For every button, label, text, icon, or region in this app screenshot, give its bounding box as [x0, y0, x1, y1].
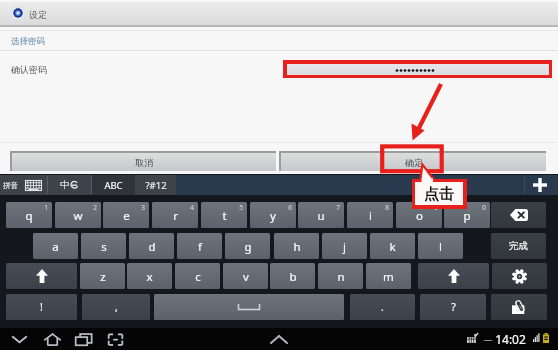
button[interactable]: o [396, 202, 442, 228]
button[interactable]: . [350, 294, 415, 320]
button[interactable]: s [81, 233, 126, 259]
staticText: , [115, 300, 118, 314]
staticText: . [381, 300, 384, 314]
staticText: 拼音 [3, 181, 18, 190]
button[interactable]: Shift [418, 263, 489, 289]
button[interactable]: 拼音 [0, 175, 46, 195]
button[interactable]: t [201, 202, 247, 228]
button[interactable]: g [225, 233, 270, 259]
button[interactable]: v [223, 263, 268, 289]
button[interactable]: b [270, 263, 315, 289]
staticText: 确定 [405, 157, 423, 168]
staticText: x [146, 269, 153, 285]
button[interactable]: i [347, 202, 393, 228]
staticText: 确认密码 [11, 64, 47, 75]
button[interactable]: 完成 [491, 233, 546, 259]
button[interactable]: f [177, 233, 222, 259]
staticText: — [483, 333, 493, 345]
button[interactable]: Attachment [491, 294, 547, 320]
staticText: h [293, 239, 301, 255]
button[interactable]: ABC [92, 175, 135, 195]
button[interactable]: k [370, 233, 415, 259]
button[interactable]: Chinese / English [48, 175, 90, 195]
button[interactable]: Screenshot [103, 328, 127, 350]
button[interactable]: q [6, 202, 52, 228]
button[interactable]: Add [525, 175, 554, 195]
button[interactable]: u [298, 202, 344, 228]
staticText: k [389, 239, 396, 255]
button[interactable]: 点击 [415, 182, 463, 205]
button[interactable]: Back [7, 328, 31, 350]
button[interactable]: p [444, 202, 490, 228]
staticText: 点击 [424, 185, 454, 204]
button[interactable]: n [318, 263, 363, 289]
staticText: j [343, 239, 346, 255]
staticText: 3 [141, 203, 145, 212]
staticText: ABC [104, 179, 123, 192]
button[interactable]: z [80, 263, 125, 289]
staticText: s [101, 239, 107, 255]
staticText: g [244, 239, 252, 255]
button[interactable]: m [366, 263, 411, 289]
staticText: ?#12 [145, 179, 167, 192]
button[interactable]: d [129, 233, 174, 259]
staticText: 0 [482, 203, 486, 212]
staticText: p [463, 208, 471, 224]
button[interactable]: , [82, 294, 150, 320]
staticText: v [243, 269, 249, 285]
staticText: c [195, 269, 201, 285]
button[interactable]: c [175, 263, 220, 289]
staticText: 取消 [135, 157, 153, 168]
staticText: l [439, 239, 442, 255]
button[interactable]: Backspace [491, 202, 546, 228]
button[interactable]: Keyboard settings [492, 263, 547, 289]
button[interactable]: a [33, 233, 78, 259]
button[interactable]: ? [420, 294, 486, 320]
button[interactable]: Shift [6, 263, 77, 289]
button[interactable]: r [152, 202, 198, 228]
button[interactable]: ! [6, 294, 77, 320]
button[interactable]: x [127, 263, 172, 289]
staticText: n [337, 269, 345, 285]
button[interactable]: h [274, 233, 319, 259]
staticText: r [173, 208, 178, 224]
button[interactable]: 确定 [279, 151, 546, 171]
button[interactable]: y [250, 202, 296, 228]
staticText: ! [40, 300, 43, 314]
staticText: 7 [336, 203, 340, 212]
button[interactable]: Space [154, 294, 344, 320]
staticText: 14:02 [495, 331, 526, 347]
staticText: b [289, 269, 297, 285]
button[interactable]: j [322, 233, 367, 259]
button[interactable]: e [103, 202, 149, 228]
staticText: 5 [239, 203, 243, 212]
staticText: 设定 [29, 9, 47, 20]
staticText: w [73, 208, 83, 224]
button[interactable]: ?#12 [135, 175, 176, 195]
staticText: 2 [93, 203, 97, 212]
button[interactable] [287, 64, 549, 75]
staticText: z [100, 269, 106, 285]
staticText: o [416, 208, 423, 224]
staticText: 完成 [509, 240, 528, 252]
staticText: m [383, 269, 394, 285]
button[interactable]: w [55, 202, 101, 228]
staticText: f [198, 239, 202, 255]
staticText: ? [451, 300, 456, 314]
button[interactable]: 选择密码 [0, 31, 558, 50]
staticText: i [369, 208, 372, 224]
staticText: u [317, 208, 325, 224]
staticText: 1 [44, 203, 48, 212]
staticText: 8 [385, 203, 389, 212]
button[interactable]: l [418, 233, 463, 259]
staticText: 9 [434, 203, 438, 212]
button[interactable]: Home [40, 328, 64, 350]
button[interactable]: Hide keyboard [266, 330, 292, 348]
staticText: d [148, 239, 156, 255]
staticText: 中 [60, 179, 70, 191]
staticText: a [52, 239, 59, 255]
button[interactable]: 设定 [0, 2, 558, 25]
button[interactable]: Recents [71, 328, 95, 350]
staticText: t [222, 208, 227, 224]
button[interactable]: 取消 [10, 151, 276, 171]
